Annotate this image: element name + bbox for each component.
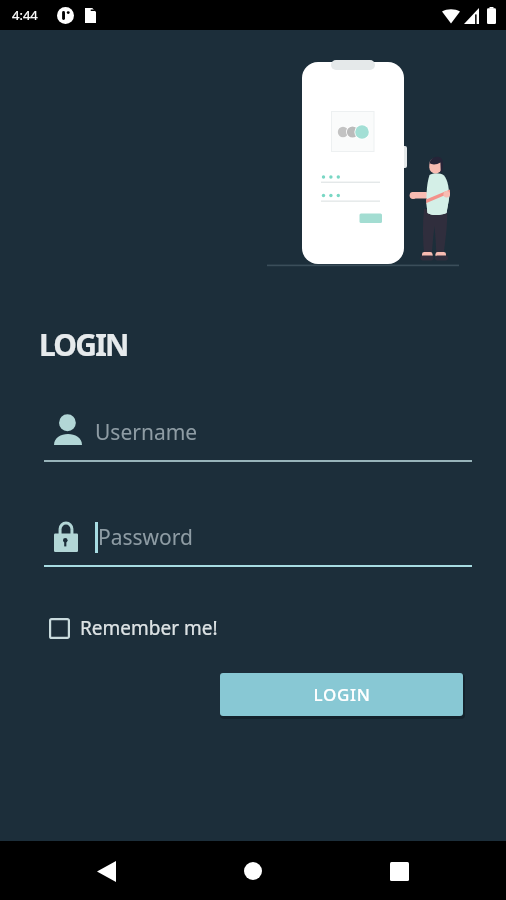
staticText: Username (95, 418, 198, 447)
button[interactable]: Password (44, 521, 472, 567)
button[interactable]: Remember me! (44, 615, 218, 641)
button[interactable]: Home (225, 843, 281, 899)
staticText: LOGIN (313, 683, 371, 706)
button[interactable]: Back (78, 843, 134, 899)
staticText: LOGIN (39, 324, 128, 365)
button[interactable]: LOGIN (220, 673, 463, 716)
staticText: Remember me! (80, 615, 218, 641)
staticText: Password (98, 523, 193, 552)
button[interactable]: Recent apps (371, 843, 427, 899)
button[interactable]: Username (44, 416, 472, 462)
staticText: 4:44 (12, 6, 38, 24)
